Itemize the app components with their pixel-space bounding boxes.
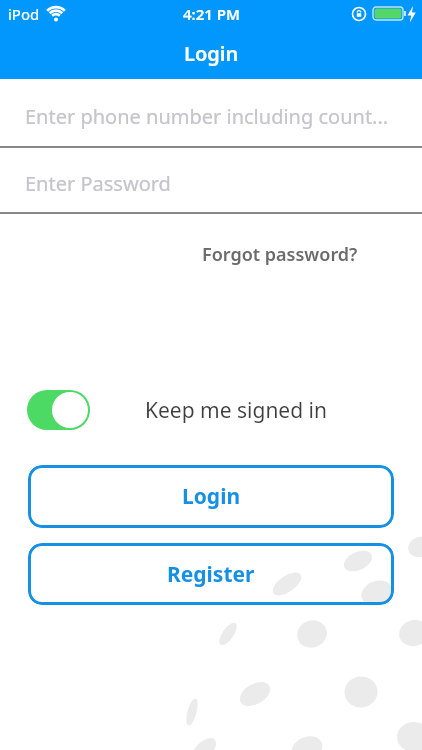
button[interactable]: Enter Password [0,148,422,212]
button[interactable]: Enter phone number including count... [0,79,422,146]
button[interactable] [27,390,90,430]
staticText: Keep me signed in [145,396,327,425]
staticText: Enter phone number including count... [25,103,389,130]
staticText: 4:21 PM [183,4,240,24]
staticText: Login [184,40,239,67]
staticText: iPod [8,4,40,24]
button[interactable]: Register [28,543,394,605]
staticText: Enter Password [25,170,171,197]
button[interactable]: Login [28,465,394,528]
staticText: Register [167,560,255,589]
button[interactable]: Forgot password? [202,242,358,267]
staticText: Login [182,482,241,511]
